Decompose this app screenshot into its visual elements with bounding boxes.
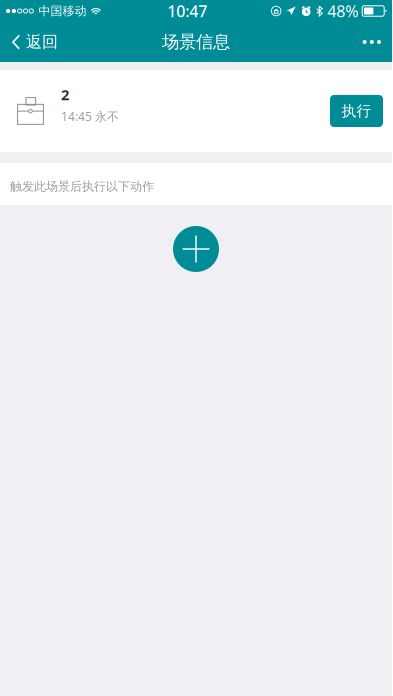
staticText: 执行 xyxy=(341,102,371,120)
staticText: 2 xyxy=(61,85,69,104)
staticText: 48% xyxy=(327,0,358,22)
staticText: 中国移动 xyxy=(38,4,86,18)
staticText: 触发此场景后执行以下动作 xyxy=(10,179,154,194)
staticText: 返回 xyxy=(26,32,58,52)
button[interactable]: 返回 xyxy=(0,22,68,62)
staticText: 14:45 永不 xyxy=(61,108,119,124)
button[interactable]: More options xyxy=(351,22,392,62)
button[interactable]: Add action xyxy=(173,226,219,272)
button[interactable]: 执行 xyxy=(330,95,383,127)
staticText: 场景信息 xyxy=(162,31,230,53)
staticText: 10:47 xyxy=(167,0,207,22)
